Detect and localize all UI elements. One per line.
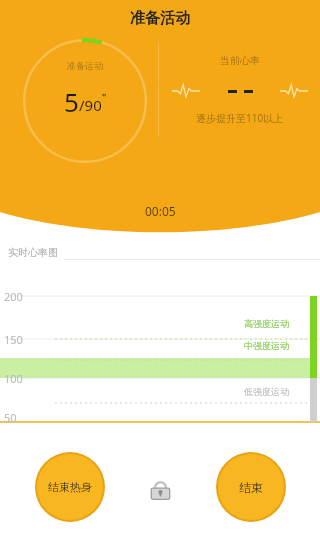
button[interactable]: Lock screen [141, 470, 179, 508]
staticText: 100 [4, 371, 23, 386]
staticText: 150 [4, 332, 23, 347]
staticText: 当前心率 [220, 54, 260, 67]
staticText: 5 [64, 84, 79, 119]
staticText: 准备运动 [67, 60, 103, 71]
staticText: 高强度运动 [244, 318, 289, 329]
staticText: /90 [79, 95, 102, 115]
staticText: 结束热身 [48, 480, 92, 494]
staticText: " [102, 90, 107, 102]
staticText: 中强度运动 [244, 340, 289, 351]
staticText: 实时心率图 [8, 246, 58, 259]
staticText: 低强度运动 [244, 386, 289, 397]
staticText: 200 [4, 289, 23, 304]
button[interactable]: 结束热身 [37, 454, 103, 520]
staticText: 逐步提升至110以上 [196, 111, 284, 125]
staticText: 00:05 [145, 203, 176, 219]
staticText: 结束 [239, 480, 263, 495]
staticText: 准备活动 [130, 9, 190, 28]
button[interactable]: 结束 [218, 454, 284, 520]
staticText: 50 [4, 410, 17, 425]
